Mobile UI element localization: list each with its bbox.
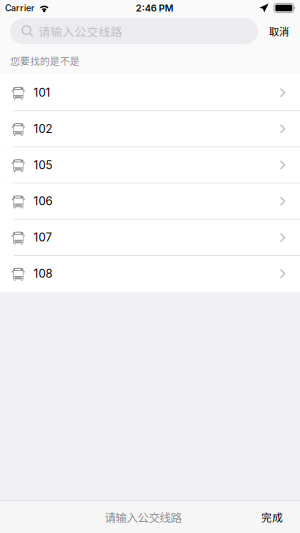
staticText: 您要找的是不是 bbox=[10, 53, 80, 68]
staticText: 完成 bbox=[261, 509, 283, 525]
button[interactable]: 102 bbox=[0, 111, 300, 147]
button[interactable]: 101 bbox=[0, 75, 300, 111]
button[interactable]: 106 bbox=[0, 184, 300, 220]
staticText: Carrier bbox=[5, 3, 34, 13]
staticText: 取消 bbox=[269, 24, 289, 38]
button[interactable]: 完成 bbox=[250, 501, 294, 533]
staticText: 102 bbox=[33, 122, 52, 136]
button[interactable]: 105 bbox=[0, 147, 300, 184]
staticText: 108 bbox=[33, 267, 52, 281]
button[interactable]: 107 bbox=[0, 220, 300, 256]
staticText: 2:46 PM bbox=[136, 2, 174, 14]
staticText: 请输入公交线路 bbox=[104, 509, 181, 525]
button[interactable]: 取消 bbox=[258, 18, 300, 44]
staticText: 请输入公交线路 bbox=[38, 23, 122, 40]
staticText: 101 bbox=[33, 86, 50, 100]
button[interactable]: 108 bbox=[0, 256, 300, 292]
staticText: 105 bbox=[33, 158, 52, 172]
staticText: 106 bbox=[33, 194, 52, 208]
staticText: 107 bbox=[33, 230, 51, 244]
